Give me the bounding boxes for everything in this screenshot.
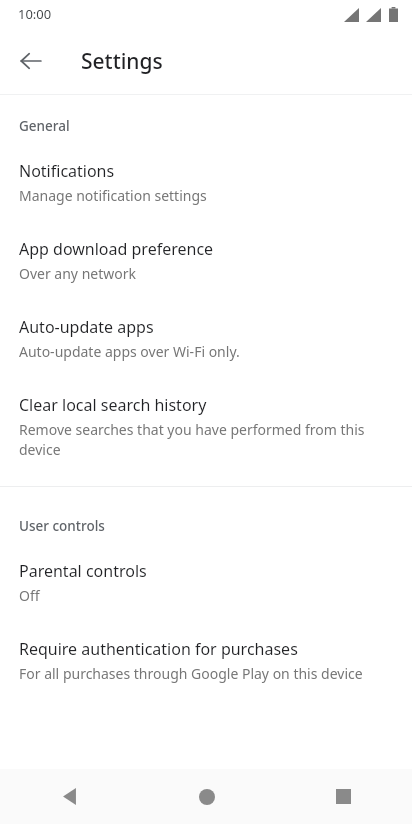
staticText: Off	[19, 586, 40, 605]
button[interactable]: Home	[138, 769, 275, 824]
button[interactable]: Require authentication for purchases	[0, 638, 412, 683]
staticText: 10:00	[18, 5, 52, 23]
staticText: General	[19, 117, 70, 135]
button[interactable]: Back	[0, 769, 138, 824]
button[interactable]: Clear local search history	[0, 394, 412, 460]
button[interactable]: Recents	[275, 769, 412, 824]
staticText: Auto-update apps	[19, 316, 154, 338]
staticText: Settings	[81, 47, 163, 76]
staticText: For all purchases through Google Play on…	[19, 664, 363, 683]
staticText: Auto-update apps over Wi-Fi only.	[19, 342, 240, 361]
button[interactable]: Notifications	[0, 160, 412, 205]
button[interactable]: Parental controls	[0, 560, 412, 605]
button[interactable]: Auto-update apps	[0, 316, 412, 361]
staticText: Over any network	[19, 264, 136, 283]
staticText: App download preference	[19, 238, 214, 260]
staticText: Parental controls	[19, 560, 147, 582]
staticText: User controls	[19, 517, 105, 535]
staticText: Require authentication for purchases	[19, 638, 298, 660]
button[interactable]: Back	[7, 37, 55, 85]
staticText: Notifications	[19, 160, 115, 182]
staticText: Remove searches that you have performed …	[19, 420, 393, 460]
staticText: Clear local search history	[19, 394, 207, 416]
staticText: Manage notification settings	[19, 186, 207, 205]
button[interactable]: App download preference	[0, 238, 412, 283]
